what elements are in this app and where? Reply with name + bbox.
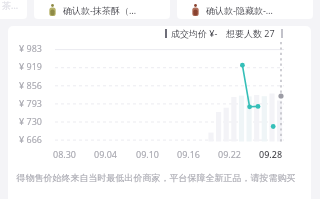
staticText: 09.22 — [218, 148, 242, 160]
staticText: ¥ 793 — [19, 97, 42, 109]
staticText: 得物售价始终来自当时最低出价商家，平台保障全新正品，请按需购买 — [0, 172, 316, 183]
staticText: 成交均价 ¥- — [171, 27, 218, 39]
staticText: 08.30 — [53, 148, 77, 160]
staticText: 确认款-抹茶酥（… — [63, 4, 137, 16]
staticText: 09.16 — [177, 148, 201, 160]
staticText: 茶… — [2, 0, 19, 11]
staticText: ¥ 919 — [19, 60, 42, 72]
staticText: 想要人数 27 — [226, 27, 275, 39]
staticText: 确认款-隐藏款-… — [206, 4, 273, 16]
staticText: ¥ 983 — [19, 42, 42, 54]
staticText: ¥ 856 — [19, 79, 42, 91]
button[interactable]: 确认款-抹茶酥（… — [34, 0, 170, 19]
staticText: 09.04 — [94, 148, 118, 160]
staticText: ¥ 666 — [19, 133, 42, 145]
staticText: 09.28 — [259, 148, 283, 160]
button[interactable]: 茶… — [0, 0, 27, 19]
staticText: ¥ 730 — [19, 115, 42, 127]
button[interactable]: 确认款-隐藏款-… — [177, 0, 313, 19]
staticText: 09.10 — [136, 148, 160, 160]
